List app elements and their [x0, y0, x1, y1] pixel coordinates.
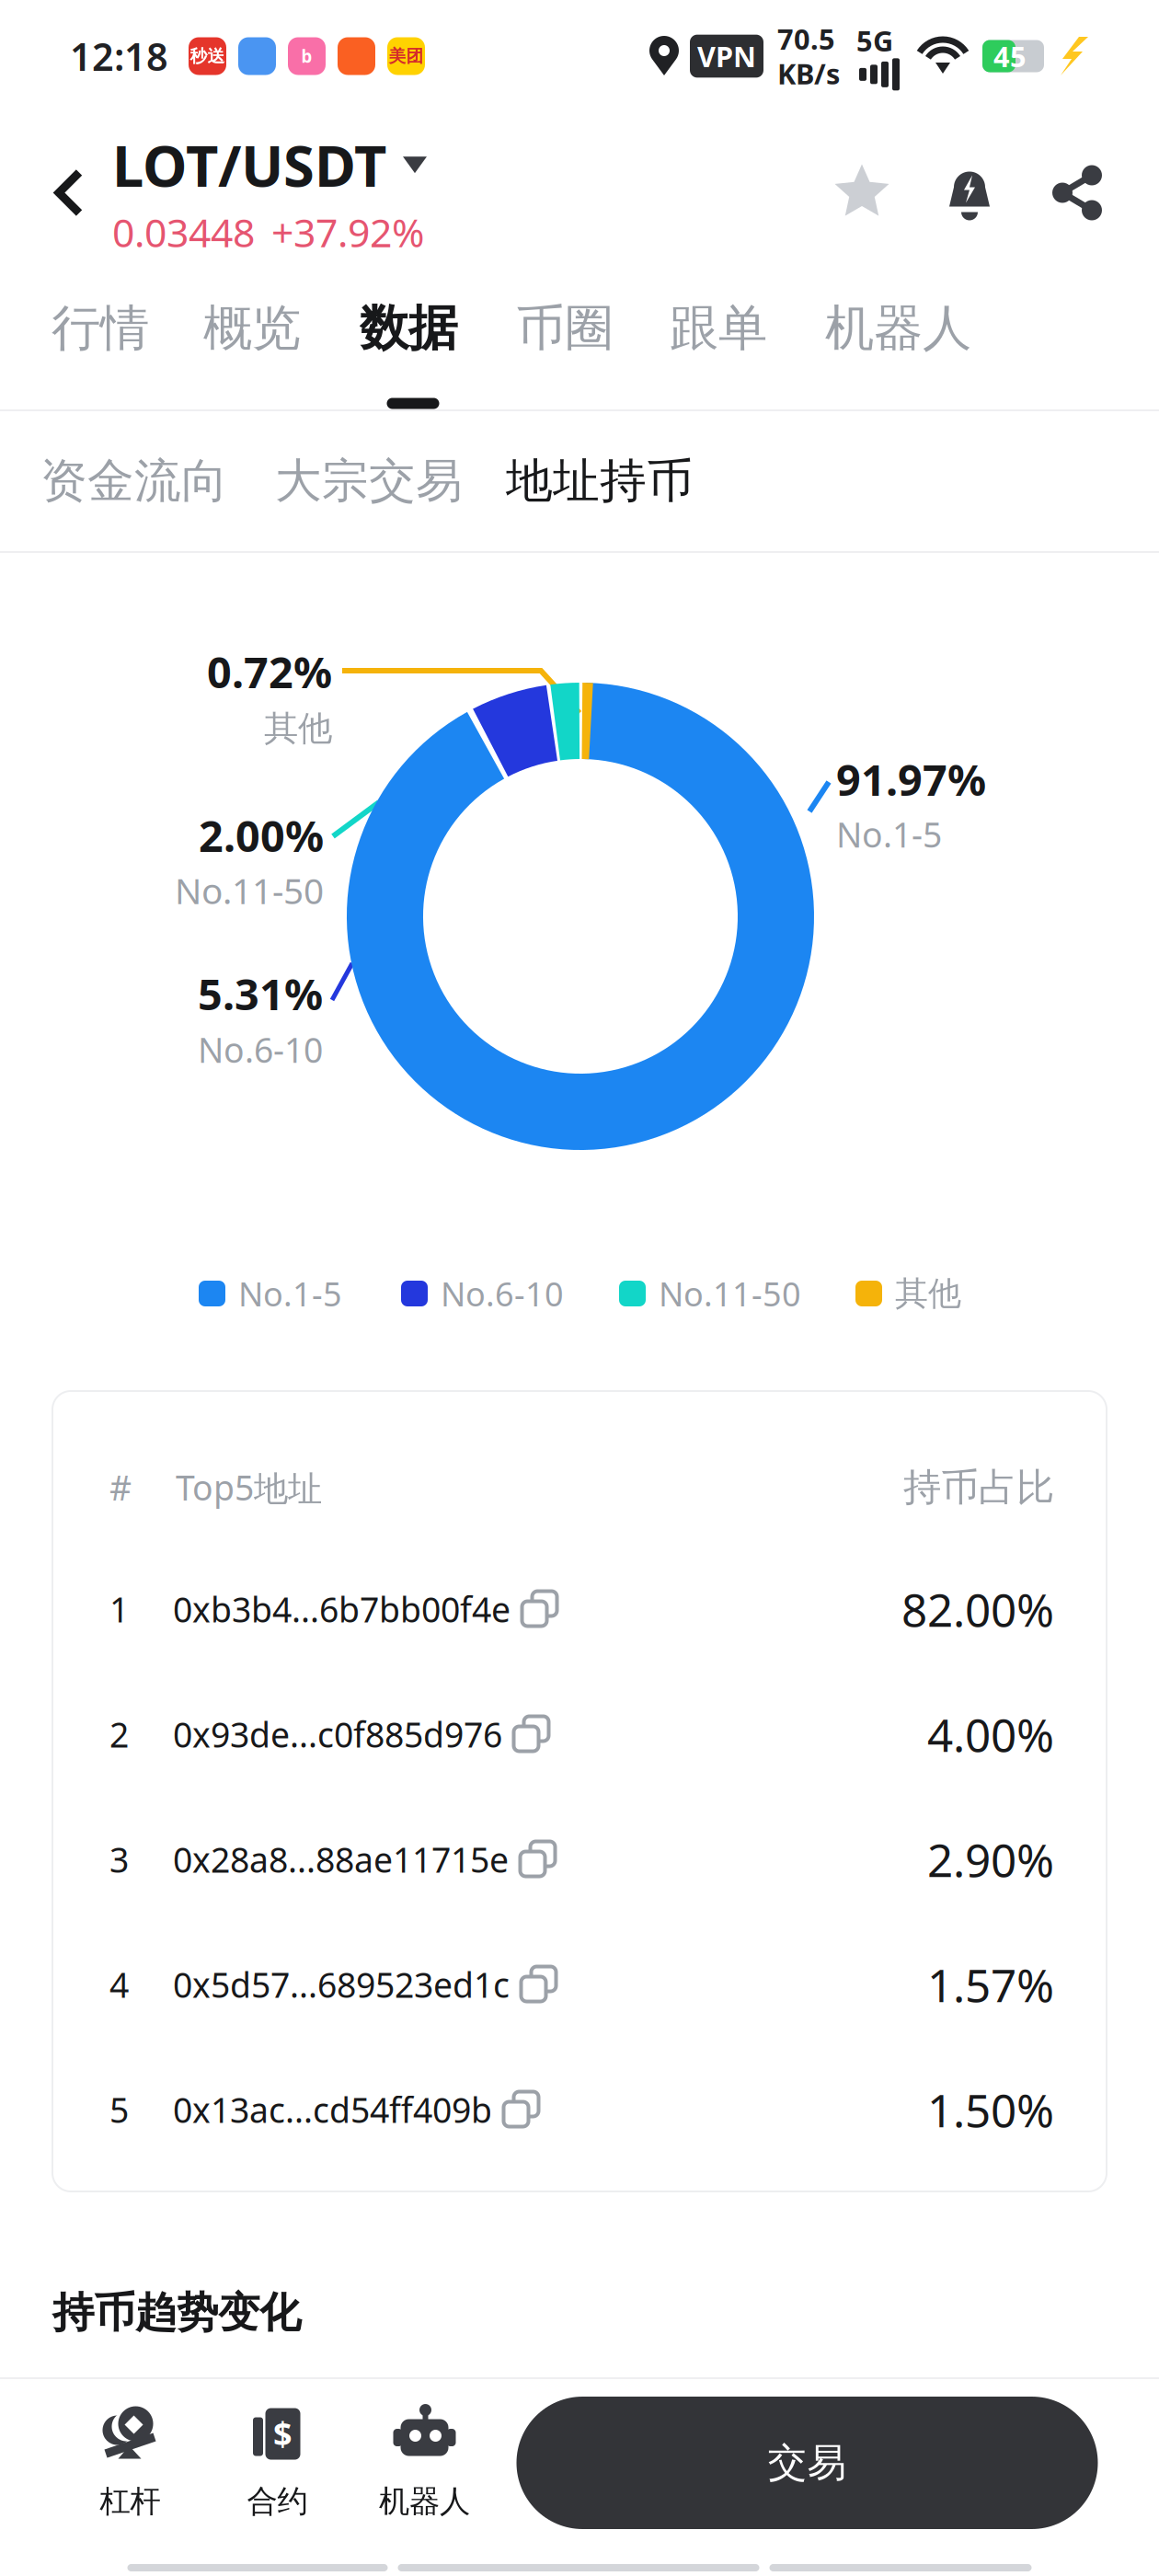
staticText: 其他 — [264, 707, 332, 750]
staticText: 0x5d57...689523ed1c — [173, 1962, 510, 2007]
button[interactable]: 5 — [52, 2047, 1107, 2172]
button[interactable]: 概览 — [203, 273, 301, 409]
staticText: 1.50% — [927, 2079, 1054, 2140]
staticText: 1 — [109, 1586, 129, 1632]
staticText: 数据 — [360, 298, 457, 358]
button[interactable]: 4 — [52, 1922, 1107, 2047]
staticText: 秒送 — [190, 46, 225, 67]
staticText: 5.31% — [198, 965, 323, 1022]
staticText: 持币占比 — [903, 1464, 1054, 1511]
staticText: 82.00% — [901, 1579, 1054, 1639]
staticText: 0.72% — [207, 643, 332, 700]
button[interactable]: 2 — [52, 1672, 1107, 1797]
button[interactable]: 币圈 — [516, 273, 614, 409]
staticText: 0x93de...c0f885d976 — [173, 1711, 502, 1757]
staticText: 12:18 — [70, 31, 168, 81]
staticText: +37.92% — [271, 206, 424, 258]
staticText: No.1-5 — [836, 811, 942, 857]
staticText: 4 — [109, 1962, 129, 2007]
button[interactable]: Price alert — [944, 162, 995, 223]
staticText: 美团 — [389, 46, 424, 67]
staticText: 1.57% — [927, 1954, 1054, 2015]
staticText: 跟单 — [670, 298, 767, 358]
staticText: 5 — [109, 2087, 129, 2132]
staticText: 4.00% — [927, 1704, 1054, 1764]
staticText: 机器人 — [379, 2483, 470, 2520]
staticText: 持币趋势变化 — [52, 2287, 301, 2338]
button[interactable]: 地址持币 — [506, 453, 694, 510]
staticText: LOT/USDT — [112, 127, 386, 202]
staticText: Top5地址 — [176, 1464, 322, 1510]
staticText: 合约 — [247, 2483, 308, 2520]
button[interactable]: 数据 — [360, 273, 457, 409]
staticText: 其他 — [895, 1273, 961, 1314]
staticText: 91.97% — [836, 751, 986, 808]
button[interactable]: 跟单 — [670, 273, 767, 409]
button[interactable]: 杠杆 — [57, 2405, 204, 2520]
staticText: 大宗交易 — [275, 453, 463, 510]
staticText: No.11-50 — [659, 1272, 801, 1316]
staticText: 地址持币 — [506, 453, 694, 510]
staticText: KB/s — [777, 55, 840, 92]
staticText: 3 — [109, 1837, 129, 1882]
button[interactable]: 3 — [52, 1797, 1107, 1922]
button[interactable]: Share — [1049, 162, 1106, 223]
staticText: 2 — [109, 1711, 129, 1757]
button[interactable]: 1 — [52, 1547, 1107, 1672]
staticText: $ — [273, 2411, 293, 2455]
button[interactable]: 交易 — [516, 2397, 1098, 2529]
button[interactable]: $ — [204, 2405, 351, 2520]
staticText: 0xb3b4...6b7bb00f4e — [173, 1586, 511, 1632]
staticText: 0x28a8...88ae11715e — [173, 1837, 509, 1882]
button[interactable]: Back — [52, 165, 93, 220]
staticText: 0x13ac...cd54ff409b — [173, 2087, 492, 2132]
button[interactable]: 大宗交易 — [275, 453, 463, 510]
staticText: 交易 — [768, 2439, 847, 2487]
staticText: # — [109, 1464, 132, 1510]
button[interactable]: Favourite — [833, 163, 892, 222]
button[interactable]: 机器人 — [825, 273, 971, 409]
button[interactable]: 行情 — [52, 273, 149, 409]
staticText: 0.03448 — [112, 206, 255, 258]
staticText: 2.00% — [199, 807, 324, 864]
staticText: No.6-10 — [441, 1272, 564, 1316]
staticText: 70.5 — [777, 20, 835, 57]
staticText: 资金流向 — [40, 453, 228, 510]
staticText: No.6-10 — [198, 1027, 323, 1072]
staticText: 机器人 — [825, 298, 971, 358]
staticText: 45 — [993, 37, 1027, 75]
staticText: 币圈 — [516, 298, 614, 358]
button[interactable]: 机器人 — [351, 2405, 498, 2520]
button[interactable]: 资金流向 — [40, 453, 228, 510]
staticText: 行情 — [52, 298, 149, 358]
staticText: 5G — [856, 22, 893, 59]
staticText: VPN — [697, 37, 756, 75]
staticText: 2.90% — [927, 1829, 1054, 1889]
staticText: 杠杆 — [100, 2483, 161, 2520]
staticText: 概览 — [203, 298, 301, 358]
staticText: No.1-5 — [238, 1272, 342, 1316]
staticText: No.11-50 — [175, 867, 324, 914]
staticText: b — [301, 45, 312, 68]
